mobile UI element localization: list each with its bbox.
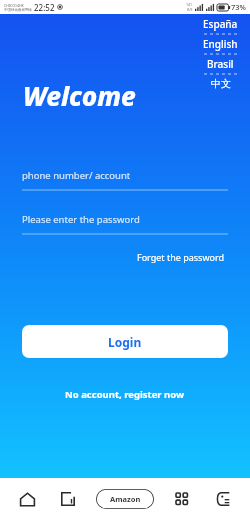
staticText: English [203, 37, 238, 51]
staticText: Please enter the password [22, 213, 140, 226]
staticText: España [203, 17, 238, 31]
button[interactable]: 中文 [205, 75, 237, 92]
button[interactable]: Forget the password [133, 247, 228, 267]
button[interactable]: Please enter the password [22, 213, 228, 235]
staticText: Brasil [207, 57, 234, 71]
staticText: 中文 [211, 77, 231, 90]
staticText: Welcome [23, 78, 136, 113]
staticText: phone number/ account [22, 169, 131, 182]
button[interactable]: Amazon [96, 489, 154, 509]
button[interactable]: Home [14, 486, 40, 512]
button[interactable]: English [197, 35, 244, 53]
staticText: Forget the password [137, 251, 224, 263]
staticText: 中国移动数据网络 [4, 8, 32, 12]
button[interactable]: Brasil [201, 55, 240, 73]
button[interactable]: No account, register now [61, 384, 189, 405]
button[interactable]: Apps [169, 486, 195, 512]
staticText: K/S [187, 7, 193, 12]
staticText: CHICCD4HK [4, 3, 24, 8]
button[interactable]: Login [22, 325, 228, 358]
staticText: Amazon [110, 494, 141, 504]
button[interactable]: phone number/ account [22, 169, 228, 191]
staticText: 141 [186, 2, 193, 7]
staticText: Login [108, 334, 142, 350]
button[interactable]: España [197, 15, 244, 33]
staticText: No account, register now [65, 388, 185, 401]
button[interactable]: Tabs [55, 486, 81, 512]
staticText: 73% [231, 2, 246, 12]
staticText: 22:52 [34, 2, 55, 13]
button[interactable]: Profile [210, 486, 236, 512]
